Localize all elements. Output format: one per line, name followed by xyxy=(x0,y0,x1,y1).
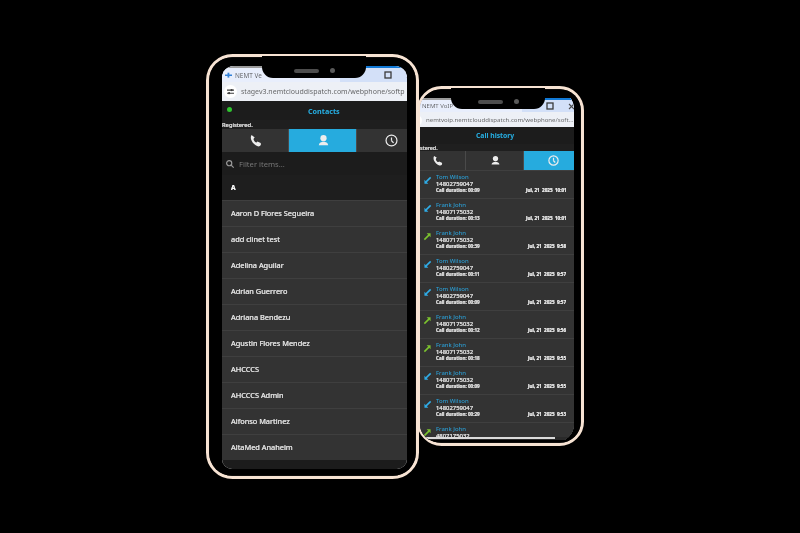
staticText: Adelina Aguilar xyxy=(231,260,284,270)
staticText: 14807175032 xyxy=(436,236,474,244)
button[interactable]: Call history xyxy=(524,151,574,170)
staticText: Adriana Bendezu xyxy=(231,312,291,322)
staticText: Call duration: 00:39 xyxy=(436,243,480,249)
staticText: Call duration: 00:12 xyxy=(436,327,480,333)
button[interactable]: Agustin Flores Mendez xyxy=(222,330,407,356)
staticText: Registered. xyxy=(420,144,438,151)
staticText: Jul, 21 2025 9:58 xyxy=(528,243,567,249)
button[interactable]: Frank John xyxy=(420,422,574,440)
staticText: Registered. xyxy=(222,121,253,129)
button[interactable]: Adelina Aguilar xyxy=(222,252,407,278)
button[interactable]: Tom Wilson xyxy=(420,282,574,310)
button[interactable]: Call history xyxy=(357,129,407,152)
button[interactable]: Frank John xyxy=(420,366,574,394)
button[interactable]: AltaMed Anaheim xyxy=(222,434,407,460)
staticText: A xyxy=(231,183,236,192)
staticText: Frank John xyxy=(436,229,466,237)
staticText: Jul, 21 2025 9:57 xyxy=(528,299,567,305)
button[interactable]: Aaron D Flores Segueira xyxy=(222,200,407,226)
staticText: 4807175032 xyxy=(436,432,470,440)
button[interactable]: Alfonso Martinez xyxy=(222,408,407,434)
staticText: Jul, 21 2025 9:49 xyxy=(528,439,567,440)
staticText: 14807175032 xyxy=(436,320,474,328)
staticText: 14802759047 xyxy=(436,264,474,272)
staticText: 14802759047 xyxy=(436,180,474,188)
staticText: 14807175032 xyxy=(436,348,474,356)
staticText: Alfonso Martinez xyxy=(231,416,290,426)
staticText: add clinet test xyxy=(231,234,280,244)
staticText: 14807175032 xyxy=(436,376,474,384)
button[interactable]: Frank John xyxy=(420,226,574,254)
staticText: Jul, 21 2025 10:01 xyxy=(526,215,567,221)
staticText: Frank John xyxy=(436,369,466,377)
staticText: Call duration: 00:29 xyxy=(436,411,480,417)
staticText: Jul, 21 2025 9:56 xyxy=(528,327,567,333)
staticText: Jul, 21 2025 9:55 xyxy=(528,355,567,361)
button[interactable]: Tom Wilson xyxy=(420,254,574,282)
staticText: nemtvoip.nemtclouddispatch.com/webphone/… xyxy=(426,116,574,124)
staticText: 14802759047 xyxy=(436,292,474,300)
staticText: NEMT VoIP xyxy=(422,102,454,110)
staticText: Frank John xyxy=(436,201,466,209)
staticText: Tom Wilson xyxy=(436,173,469,181)
staticText: Jul, 21 2025 10:01 xyxy=(526,187,567,193)
staticText: AHCCCS xyxy=(231,364,259,374)
staticText: Call duration: 00:09 xyxy=(436,187,480,193)
button[interactable]: Dialpad xyxy=(222,129,289,152)
staticText: Call duration: 00:18 xyxy=(436,355,480,361)
staticText: Jul, 21 2025 9:53 xyxy=(528,411,567,417)
button[interactable]: AHCCCS Admin xyxy=(222,382,407,408)
button[interactable]: Contacts xyxy=(466,151,524,170)
staticText: Tom Wilson xyxy=(436,285,469,293)
button[interactable]: Adrian Guerrero xyxy=(222,278,407,304)
button[interactable]: Adriana Bendezu xyxy=(222,304,407,330)
staticText: Tom Wilson xyxy=(436,397,469,405)
staticText: Call duration: 00:09 xyxy=(436,299,480,305)
staticText: Tom Wilson xyxy=(436,257,469,265)
staticText: AltaMed Anaheim xyxy=(231,442,293,452)
staticText: Agustin Flores Mendez xyxy=(231,338,310,348)
staticText: 14802759047 xyxy=(436,404,474,412)
staticText: Adrian Guerrero xyxy=(231,286,288,296)
staticText: Jul, 21 2025 9:55 xyxy=(528,383,567,389)
staticText: Frank John xyxy=(436,425,466,433)
button[interactable]: AHCCCS xyxy=(222,356,407,382)
button[interactable]: Dialpad xyxy=(420,151,466,170)
staticText: Contacts xyxy=(308,106,340,116)
button[interactable]: Contacts xyxy=(289,129,357,152)
staticText: Aaron D Flores Segueira xyxy=(231,208,315,218)
button[interactable]: Frank John xyxy=(420,338,574,366)
staticText: Jul, 21 2025 9:57 xyxy=(528,271,567,277)
staticText: 14807175032 xyxy=(436,208,474,216)
staticText: Call duration: 00:11 xyxy=(436,271,480,277)
staticText: Frank John xyxy=(436,341,466,349)
button[interactable]: Frank John xyxy=(420,198,574,226)
button[interactable]: Tom Wilson xyxy=(420,394,574,422)
staticText: Call history xyxy=(476,131,515,140)
staticText: NEMT Ve xyxy=(235,71,262,80)
staticText: stagev3.nemtclouddispatch.com/webphone/s… xyxy=(241,87,405,97)
button[interactable]: Tom Wilson xyxy=(420,170,574,198)
staticText: Call duration: 00:09 xyxy=(436,383,480,389)
staticText: Frank John xyxy=(436,313,466,321)
staticText: Filter items... xyxy=(239,159,285,169)
button[interactable]: add clinet test xyxy=(222,226,407,252)
staticText: AHCCCS Admin xyxy=(231,390,284,400)
staticText: Call duration: 00:13 xyxy=(436,215,480,221)
button[interactable]: Frank John xyxy=(420,310,574,338)
